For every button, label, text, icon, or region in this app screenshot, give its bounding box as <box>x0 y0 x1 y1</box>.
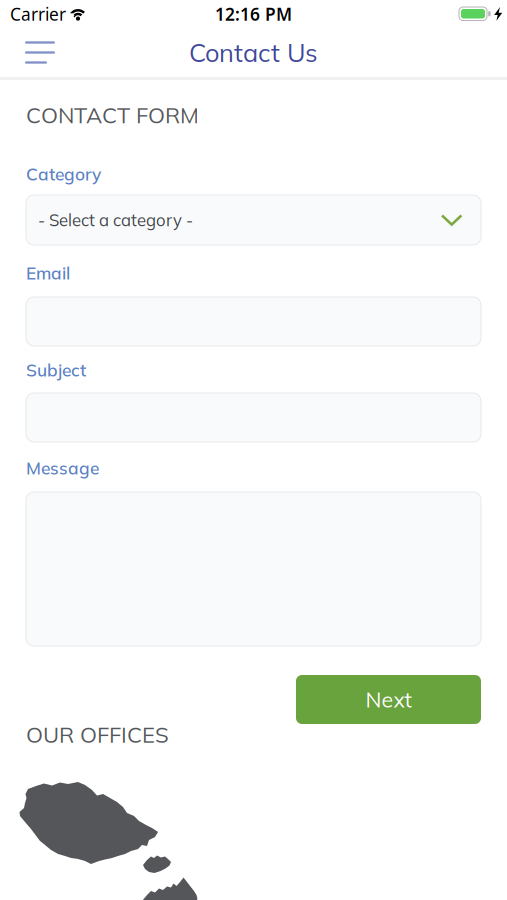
staticText: Contact Us <box>189 37 318 68</box>
staticText: CONTACT FORM <box>26 101 199 129</box>
button[interactable]: Menu <box>0 28 69 77</box>
staticText: Category <box>26 163 101 185</box>
staticText: Message <box>26 457 99 479</box>
staticText: Subject <box>26 359 86 381</box>
staticText: OUR OFFICES <box>26 721 169 748</box>
staticText: Carrier <box>10 2 66 25</box>
staticText: - Select a category - <box>38 209 193 230</box>
staticText: 12:16 PM <box>215 2 292 25</box>
button[interactable]: - Select a category - <box>0 195 507 245</box>
button[interactable]: Next <box>296 675 481 724</box>
staticText: Next <box>365 686 411 713</box>
staticText: Email <box>26 262 70 284</box>
